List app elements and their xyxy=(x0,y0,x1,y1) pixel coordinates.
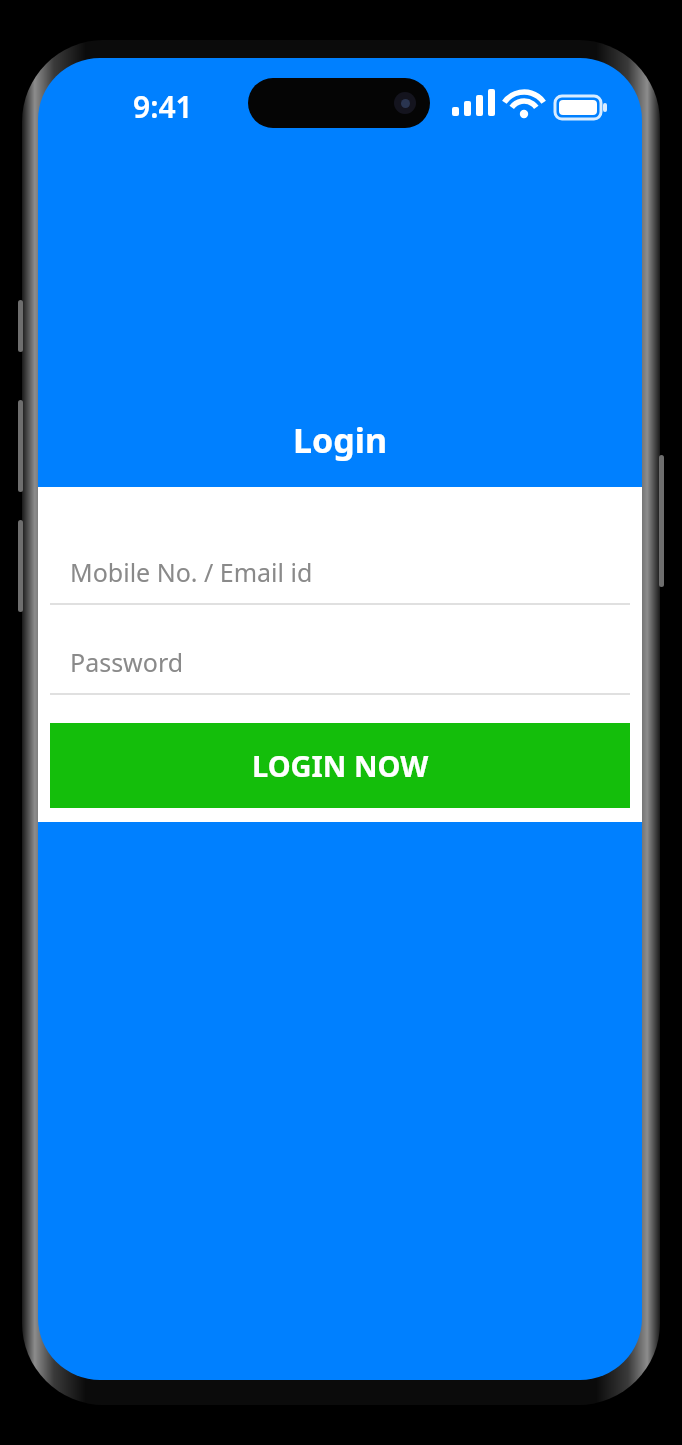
staticText: LOGIN NOW xyxy=(252,746,429,785)
button[interactable]: Mobile No. / Email id xyxy=(38,541,642,603)
button[interactable]: Password xyxy=(38,631,642,693)
staticText: Login xyxy=(293,417,388,463)
staticText: 9:41 xyxy=(133,86,193,127)
staticText: Mobile No. / Email id xyxy=(70,555,313,589)
button[interactable]: LOGIN NOW xyxy=(50,723,630,808)
staticText: Password xyxy=(70,645,184,679)
